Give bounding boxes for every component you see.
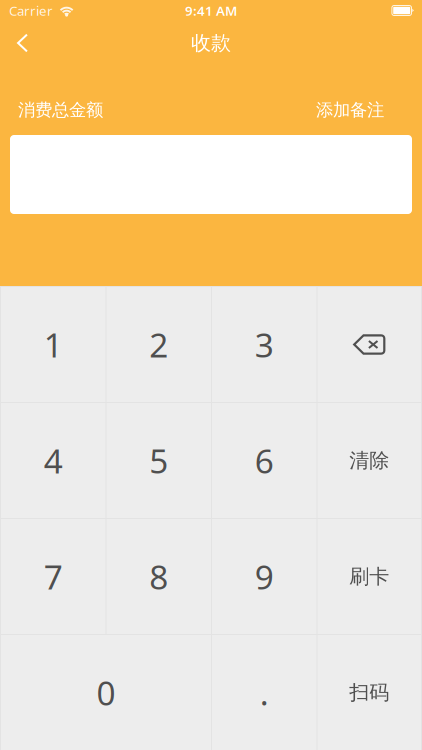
button[interactable]: 8 [105, 518, 211, 634]
button[interactable]: 3 [211, 286, 316, 402]
staticText: 添加备注 [316, 99, 384, 121]
staticText: 1 [44, 322, 63, 367]
staticText: 2 [149, 322, 168, 367]
staticText: 3 [255, 322, 274, 367]
staticText: 清除 [349, 448, 389, 473]
button[interactable]: 6 [211, 402, 316, 518]
button[interactable]: 0 [0, 634, 211, 750]
staticText: 消费总金额 [18, 99, 103, 121]
staticText: 9:41 AM [185, 2, 237, 19]
staticText: 7 [44, 554, 63, 599]
button[interactable] [316, 286, 421, 402]
staticText: 4 [44, 438, 63, 483]
staticText: Carrier [9, 2, 53, 19]
staticText: 收款 [191, 31, 231, 55]
button[interactable]: 添加备注 [316, 99, 384, 121]
staticText: 0 [96, 670, 115, 715]
staticText: 刷卡 [349, 564, 389, 589]
button[interactable]: Back [0, 21, 45, 65]
button[interactable]: 2 [105, 286, 211, 402]
button[interactable]: 4 [0, 402, 105, 518]
staticText: . [260, 670, 269, 715]
button[interactable]: 扫码 [316, 634, 421, 750]
staticText: 扫码 [349, 680, 389, 705]
button[interactable]: 刷卡 [316, 518, 421, 634]
button[interactable]: . [211, 634, 316, 750]
button[interactable]: 9 [211, 518, 316, 634]
button[interactable]: 清除 [316, 402, 421, 518]
button[interactable]: 5 [105, 402, 211, 518]
button[interactable]: 1 [0, 286, 105, 402]
staticText: 5 [149, 438, 168, 483]
staticText: 8 [149, 554, 168, 599]
staticText: 6 [255, 438, 274, 483]
button[interactable]: 7 [0, 518, 105, 634]
staticText: 9 [255, 554, 274, 599]
